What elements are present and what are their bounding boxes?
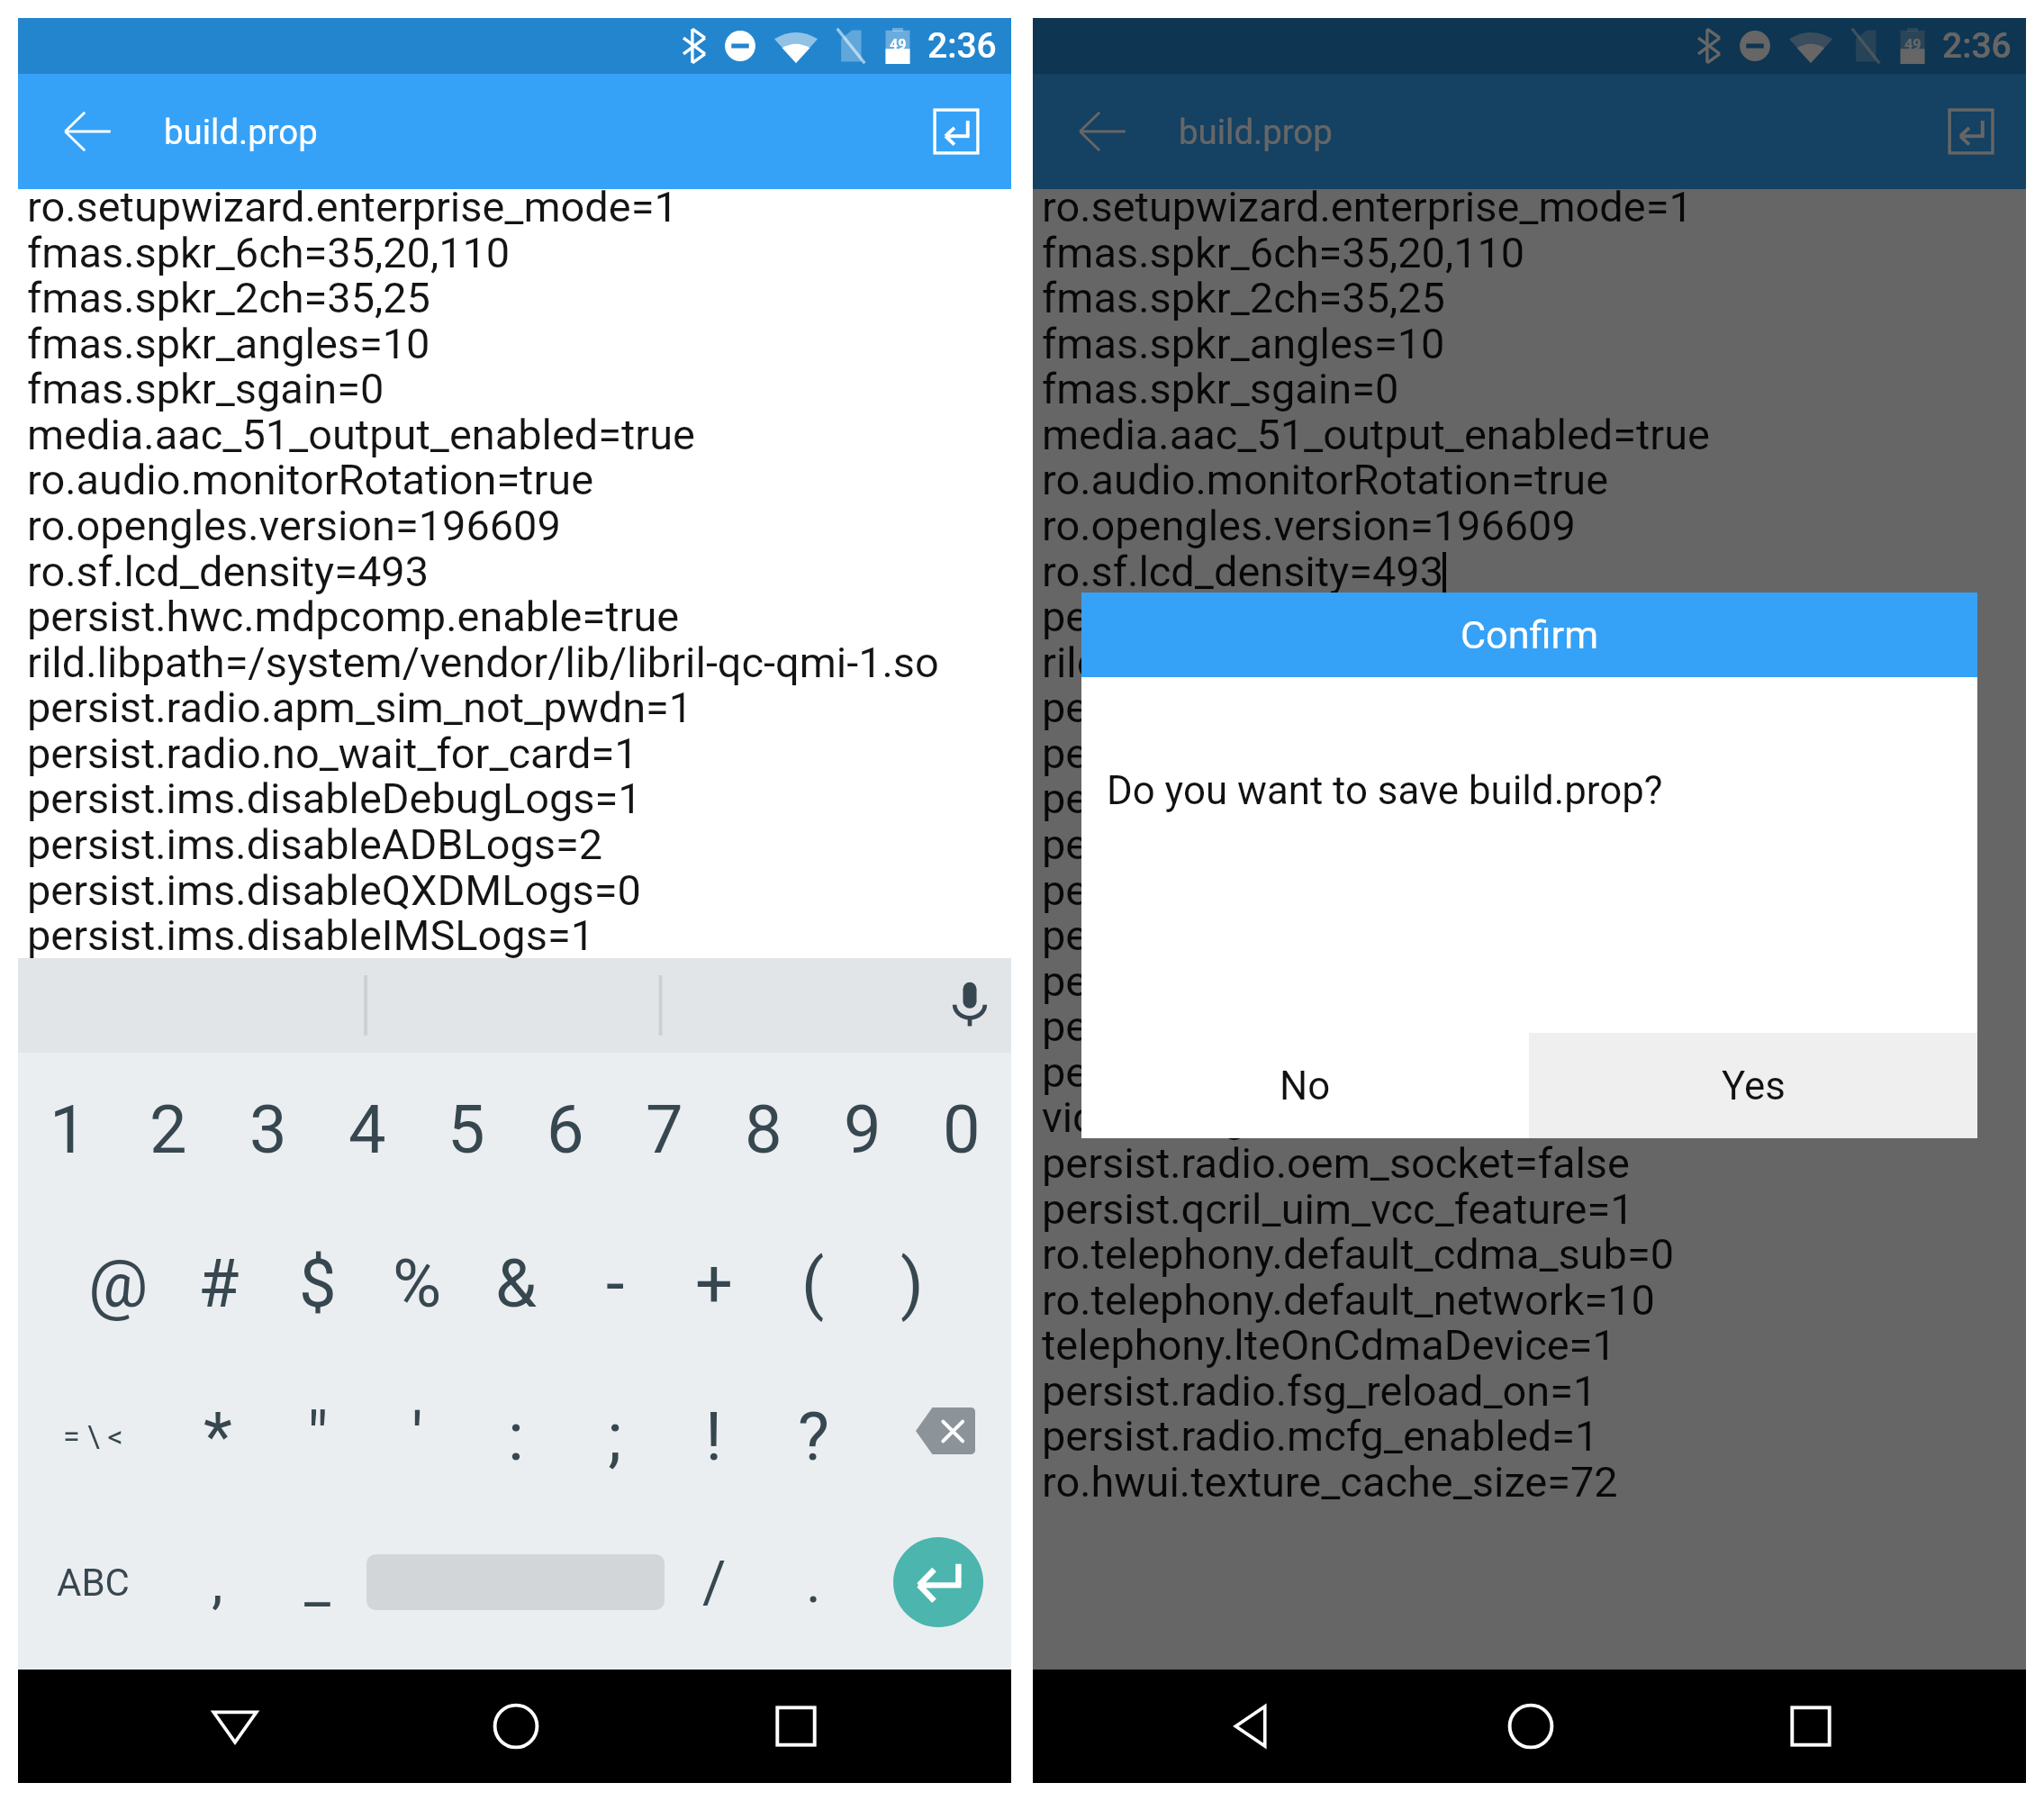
button[interactable]: ,	[167, 1513, 267, 1652]
button[interactable]: Enter	[893, 1537, 983, 1627]
staticText: 7	[646, 1091, 683, 1169]
button[interactable]: Recents	[751, 1681, 841, 1771]
staticText: 49	[890, 36, 907, 53]
button[interactable]: $	[268, 1207, 367, 1360]
staticText: @	[88, 1244, 149, 1323]
staticText: media.aac_51_output_enabled=true	[27, 410, 695, 459]
staticText: fmas.spkr_6ch=35,20,110	[27, 228, 511, 277]
button[interactable]: Backspace	[863, 1360, 1011, 1513]
staticText: fmas.spkr_2ch=35,25	[27, 273, 430, 322]
staticText: 49	[1904, 36, 1922, 53]
staticText: '	[412, 1398, 423, 1476]
staticText: ro.hwui.texture_cache_size=72	[1042, 1457, 1618, 1507]
staticText: ro.audio.monitorRotation=true	[27, 455, 594, 504]
staticText: fmas.spkr_sgain=0	[1042, 364, 1399, 413]
button[interactable]: )	[863, 1207, 962, 1360]
staticText: ;	[608, 1398, 622, 1476]
staticText: fmas.spkr_2ch=35,25	[1042, 273, 1445, 322]
staticText: 5	[448, 1091, 485, 1169]
button[interactable]: 5	[417, 1053, 516, 1207]
staticText: Do you want to save build.prop?	[1107, 767, 1663, 813]
button[interactable]: ro.setupwizard.enterprise_mode=1	[18, 189, 1011, 958]
button[interactable]: Save	[920, 95, 992, 167]
staticText: persist.qcril_uim_vcc_feature=1	[1042, 1184, 1634, 1234]
button[interactable]: +	[665, 1207, 764, 1360]
staticText: persist.hwc.mdpcomp.enable=true	[27, 592, 680, 641]
button[interactable]: 3	[218, 1053, 318, 1207]
button[interactable]: &	[466, 1207, 565, 1360]
button[interactable]: No	[1081, 1033, 1529, 1138]
staticText: persist.camera.mct.debug.mask=1	[1042, 1001, 1696, 1051]
button[interactable]: Home	[1486, 1681, 1576, 1771]
staticText: &	[495, 1244, 538, 1323]
button[interactable]: = \ <	[18, 1360, 167, 1513]
staticText: 9	[844, 1091, 882, 1169]
staticText: persist.radio.fsg_reload_on=1	[1042, 1366, 1597, 1416]
button[interactable]: Home	[471, 1681, 561, 1771]
staticText: !	[705, 1398, 723, 1476]
button[interactable]: _	[267, 1513, 366, 1652]
button[interactable]	[366, 1554, 665, 1610]
button[interactable]: ?	[764, 1360, 863, 1513]
button[interactable]: -	[565, 1207, 665, 1360]
staticText: persist.ims.disableDebugLogs=1	[1042, 774, 1657, 823]
button[interactable]: 6	[516, 1053, 615, 1207]
button[interactable]: ABC	[18, 1513, 167, 1652]
button[interactable]: "	[267, 1360, 367, 1513]
staticText: persist.hwc.mdpcomp.enable=true	[1042, 592, 1695, 641]
staticText: (	[801, 1244, 825, 1323]
button[interactable]: Back	[51, 95, 123, 167]
staticText: )	[900, 1244, 924, 1323]
button[interactable]: Voice input	[944, 977, 996, 1029]
staticText: persist.ims.disableDebugLogs=1	[27, 774, 642, 823]
button[interactable]: (	[764, 1207, 863, 1360]
button[interactable]: 8	[714, 1053, 813, 1207]
staticText: persist.ims.disableIMSLogs=1	[27, 910, 594, 960]
staticText: 2:36	[1942, 25, 2012, 67]
staticText: persist.radio.apm_sim_not_pwdn=1	[27, 683, 693, 732]
staticText: ro.sf.lcd_density=493	[27, 547, 430, 596]
staticText: *	[203, 1398, 232, 1476]
button[interactable]: 1	[18, 1053, 118, 1207]
staticText: 2	[149, 1091, 187, 1169]
staticText: No	[1280, 1063, 1331, 1109]
staticText: fmas.spkr_angles=10	[1042, 319, 1445, 368]
button[interactable]: .	[764, 1513, 863, 1652]
button[interactable]: 7	[615, 1053, 714, 1207]
staticText: ro.sf.lcd_density=493	[1042, 547, 1444, 596]
staticText: persist.ims.disableADBLogs=2	[1042, 819, 1618, 869]
button[interactable]: #	[168, 1207, 268, 1360]
button[interactable]: %	[367, 1207, 466, 1360]
button[interactable]: Recents	[1766, 1681, 1856, 1771]
button[interactable]: @	[68, 1207, 168, 1360]
button[interactable]: /	[665, 1513, 764, 1652]
button[interactable]: Back	[1066, 95, 1138, 167]
button[interactable]: '	[367, 1360, 466, 1513]
button[interactable]: :	[466, 1360, 565, 1513]
staticText: ro.opengles.version=196609	[27, 501, 561, 550]
staticText: telephony.lteOnCdmaDevice=1	[1042, 1320, 1616, 1370]
button[interactable]: ;	[565, 1360, 665, 1513]
staticText: fmas.spkr_sgain=0	[27, 364, 384, 413]
staticText: persist.radio.mcfg_enabled=1	[1042, 1411, 1599, 1461]
button[interactable]: Back	[1205, 1681, 1295, 1771]
staticText: 4	[348, 1091, 386, 1169]
button[interactable]: !	[665, 1360, 764, 1513]
staticText: persist.camera.sensor.debug=0	[1042, 1047, 1633, 1097]
staticText: 1	[50, 1091, 87, 1169]
button[interactable]: *	[167, 1360, 267, 1513]
staticText: /	[702, 1549, 727, 1616]
button[interactable]: 4	[318, 1053, 417, 1207]
button[interactable]: Hide keyboard	[190, 1681, 280, 1771]
button[interactable]: 9	[813, 1053, 912, 1207]
staticText: persist.radio.apm_sim_not_pwdn=1	[1042, 683, 1708, 732]
staticText: 8	[745, 1091, 782, 1169]
staticText: fmas.spkr_6ch=35,20,110	[1042, 228, 1525, 277]
staticText: persist.ims.disableQXDMLogs=0	[27, 865, 641, 915]
button[interactable]: Save	[1935, 95, 2007, 167]
staticText: %	[393, 1244, 442, 1323]
button[interactable]: Yes	[1529, 1033, 1977, 1138]
button[interactable]: 0	[912, 1053, 1011, 1207]
staticText: Confirm	[1461, 612, 1599, 658]
button[interactable]: 2	[118, 1053, 218, 1207]
